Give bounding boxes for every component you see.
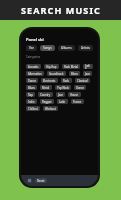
button[interactable]: Indie [83,64,93,69]
button[interactable]: Artists [78,45,93,51]
staticText: Panel ski [26,37,44,42]
button[interactable]: Latin [57,99,68,104]
button[interactable]: Metal [40,85,52,90]
staticText: Dance [28,79,36,83]
button[interactable]: Pop/Rock [55,85,71,90]
staticText: Hip-Hop [46,65,57,69]
staticText: Rock [63,79,70,83]
button[interactable]: Dance [26,78,38,83]
button[interactable]: Acoustic [26,64,41,69]
button[interactable]: Rock [61,78,72,83]
staticText: Soundtrack [49,72,64,76]
staticText: Acoustic [28,65,39,69]
staticText: Jazz [58,93,63,97]
staticText: SEARCH MUSIC [21,4,101,16]
staticText: Categories [26,55,41,59]
staticText: Country [40,93,51,97]
button[interactable]: Trance [71,99,84,104]
button[interactable]: Vse [26,45,37,51]
staticText: Workout [45,107,56,111]
staticText: Latin [59,100,66,104]
staticText: Albums [61,46,72,50]
button[interactable]: Rap [26,92,35,97]
staticText: Rock Metal [64,65,78,69]
staticText: Dance [76,86,84,90]
staticText: Classical [77,79,88,83]
staticText: Jazz [85,72,90,76]
staticText: Indie [85,64,91,69]
button[interactable]: Reggae [40,99,54,104]
staticText: Alternative [28,72,42,76]
button[interactable]: Reset [35,178,47,183]
staticText: Blues [28,86,35,90]
button[interactable]: House [68,92,81,97]
button[interactable]: Hip-Hop [44,64,59,69]
staticText: Rap [28,93,33,97]
staticText: Artists [81,46,90,50]
staticText: Blues [71,72,78,76]
button[interactable]: Albums [58,45,75,51]
button[interactable]: Workout [43,106,58,111]
button[interactable]: Rock Metal [62,64,80,69]
button[interactable]: Blues [69,71,80,76]
button[interactable]: Chillout [26,106,40,111]
staticText: Trance [73,100,82,104]
staticText: Reset [37,179,45,183]
button[interactable]: Songs [40,45,55,51]
staticText: Songs [43,46,52,50]
button[interactable]: Dance [74,85,86,90]
button[interactable]: Jazz [56,92,65,97]
button[interactable]: Soundtrack [47,71,66,76]
button[interactable]: Electronic [41,78,58,83]
button[interactable]: Alternative [26,71,44,76]
staticText: Pop/Rock [57,86,69,90]
staticText: Indie [28,100,35,104]
button[interactable]: Jazz [83,71,92,76]
staticText: Metal [42,86,50,90]
button[interactable]: Classical [75,78,90,83]
button[interactable]: Indie [26,99,37,104]
button[interactable]: Filter [27,178,32,183]
button[interactable]: Blues [26,85,37,90]
staticText: Vse [29,46,34,50]
button[interactable]: Country [38,92,53,97]
staticText: Electronic [43,79,56,83]
staticText: Reggae [42,100,52,104]
staticText: Chillout [28,107,38,111]
staticText: House [70,93,79,97]
